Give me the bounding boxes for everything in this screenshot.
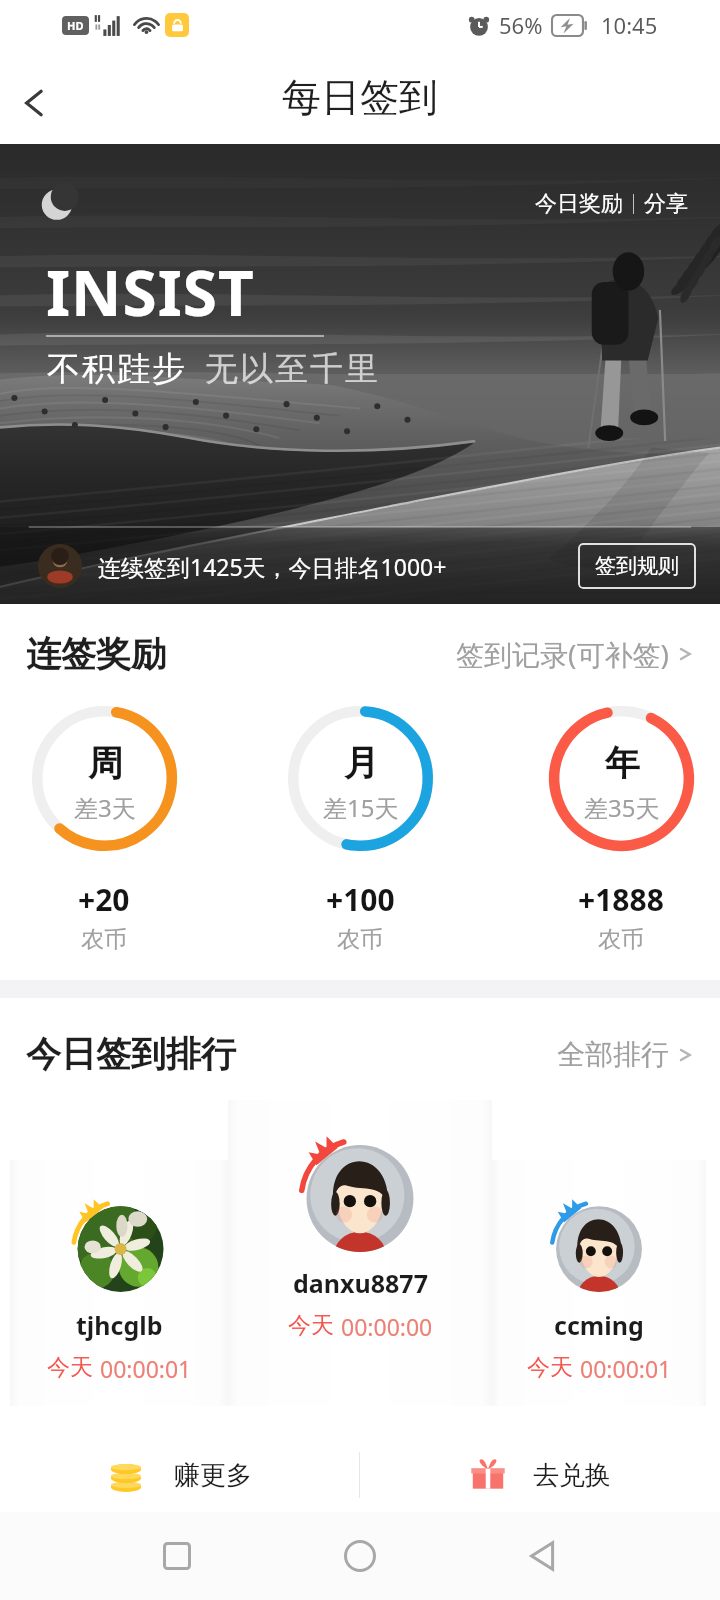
staticText: 不积跬步	[46, 348, 186, 390]
staticText: 今天	[527, 1353, 573, 1382]
staticText: 00:00:01	[580, 1353, 672, 1384]
staticText: 每日签到	[282, 73, 438, 122]
staticText: 10:45	[601, 10, 658, 40]
staticText: 00:00:01	[100, 1353, 192, 1384]
staticText: +1888	[578, 879, 664, 920]
staticText: 今日签到排行	[26, 1032, 236, 1076]
staticText: 连签奖励	[26, 632, 166, 676]
staticText: 签到记录(可补签)	[456, 635, 669, 673]
staticText: 差3天	[74, 791, 136, 824]
staticText: 年	[605, 741, 640, 785]
staticText: ccming	[554, 1308, 644, 1342]
button[interactable]: 今日奖励	[531, 186, 627, 222]
staticText: 农币	[337, 925, 383, 954]
button[interactable]: 分享	[640, 186, 692, 222]
button[interactable]: ccming	[492, 1160, 706, 1406]
staticText: 签到规则	[595, 553, 679, 579]
staticText: 周	[88, 741, 123, 785]
staticText: 月	[344, 741, 379, 785]
staticText: 差35天	[584, 791, 660, 824]
staticText: 赚更多	[174, 1459, 252, 1492]
staticText: 去兑换	[533, 1459, 611, 1492]
staticText: 00:00:00	[341, 1311, 433, 1342]
button[interactable]: Back	[516, 1529, 570, 1583]
button[interactable]: 周	[30, 706, 178, 954]
staticText: 农币	[598, 925, 644, 954]
staticText: +100	[326, 879, 395, 920]
button[interactable]: Recents	[150, 1529, 204, 1583]
staticText: 差15天	[323, 791, 399, 824]
button[interactable]: 全部排行	[552, 1032, 698, 1077]
button[interactable]: 去兑换	[360, 1452, 720, 1498]
staticText: 今天	[47, 1353, 93, 1382]
button[interactable]: Home	[333, 1529, 387, 1583]
staticText: danxu8877	[293, 1266, 428, 1300]
staticText: 分享	[644, 190, 688, 218]
staticText: 全部排行	[557, 1037, 669, 1072]
button[interactable]: danxu8877	[228, 1100, 492, 1406]
staticText: 今日奖励	[535, 190, 623, 218]
button[interactable]: Back	[0, 68, 70, 138]
staticText: 今天	[288, 1311, 334, 1340]
button[interactable]: tjhcglb	[10, 1160, 228, 1406]
button[interactable]: 赚更多	[0, 1452, 359, 1498]
button[interactable]: 签到记录(可补签)	[451, 630, 698, 678]
staticText: 农币	[81, 925, 127, 954]
button[interactable]: 月	[286, 706, 434, 954]
staticText: tjhcglb	[76, 1308, 163, 1342]
staticText: 连续签到1425天，今日排名1000+	[98, 551, 447, 582]
button[interactable]: 签到规则	[578, 543, 696, 589]
button[interactable]: 年	[547, 706, 695, 954]
staticText: INSIST	[46, 250, 255, 334]
staticText: HD	[67, 18, 84, 33]
staticText: 56%	[499, 10, 543, 40]
staticText: +20	[78, 879, 130, 920]
staticText: 无以至千里	[204, 348, 379, 390]
